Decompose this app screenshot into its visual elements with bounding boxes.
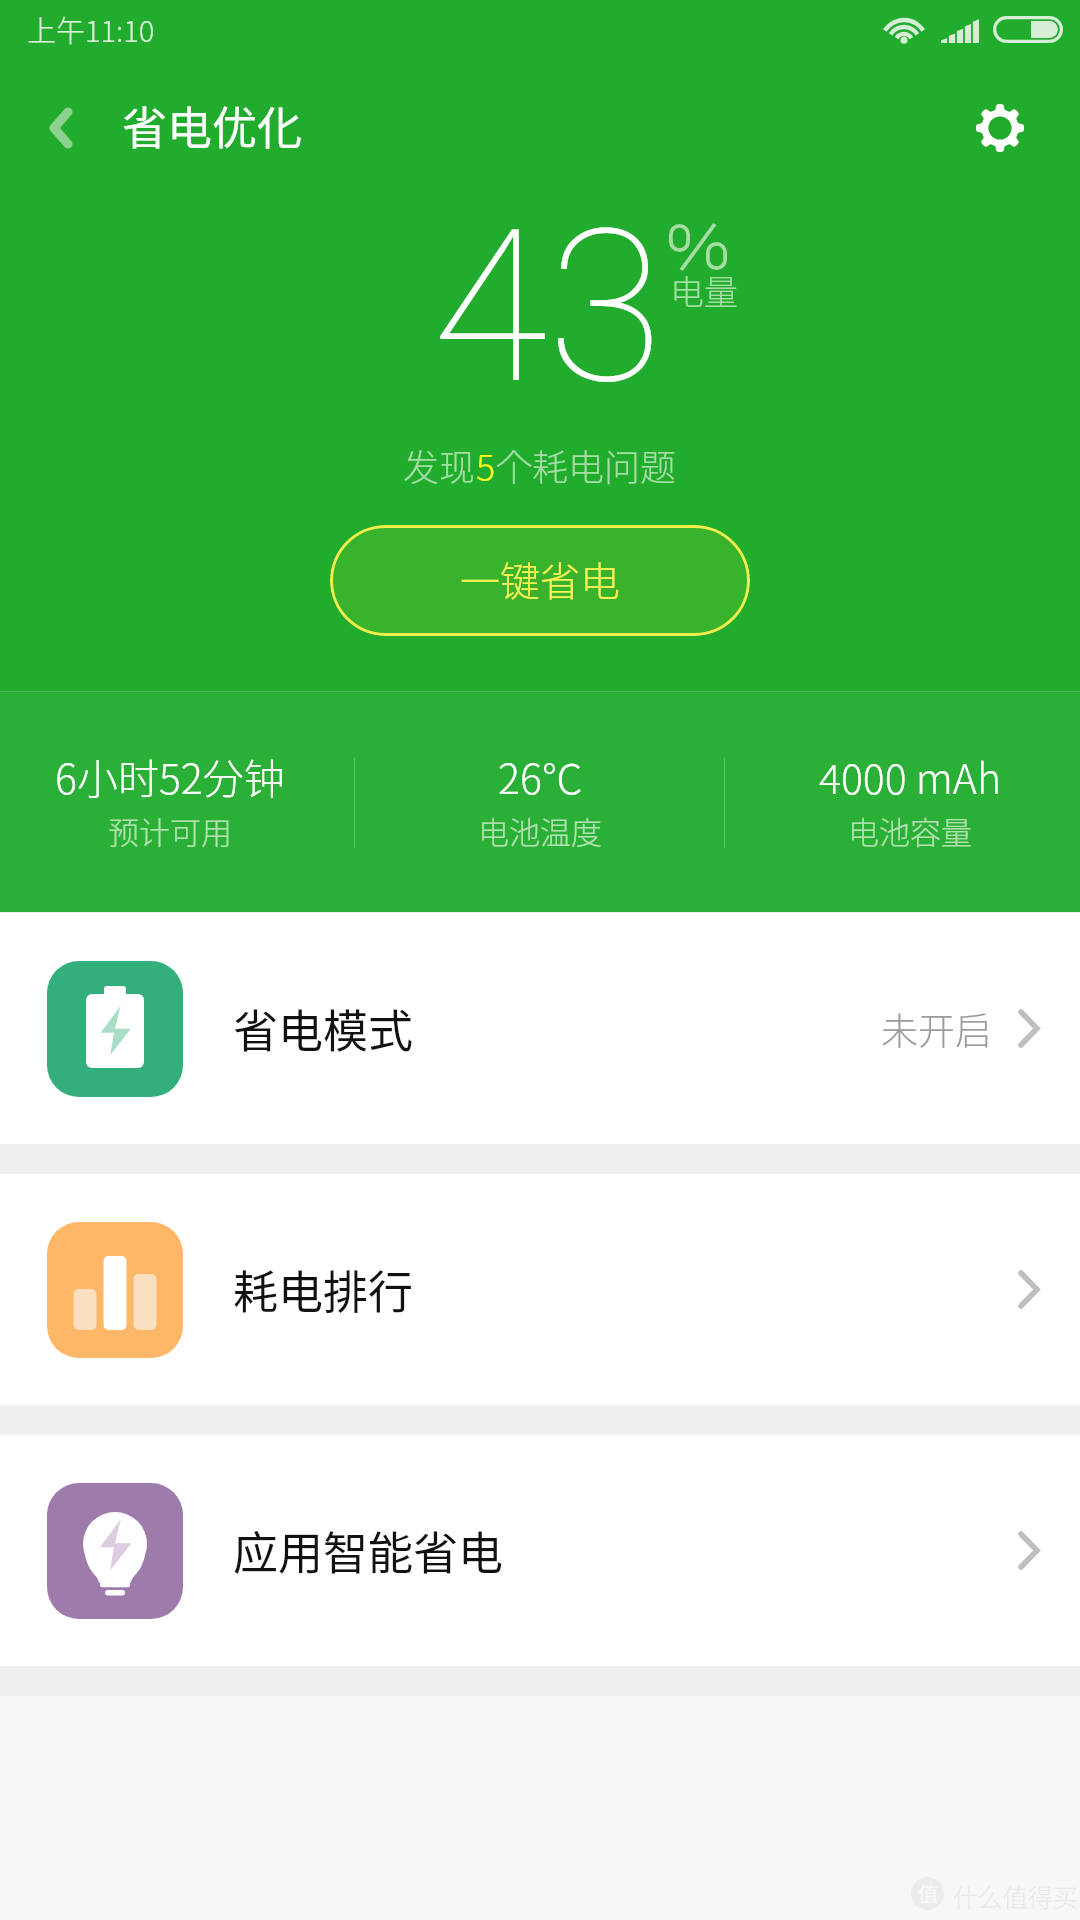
staticText: 未开启 [881, 1002, 992, 1056]
staticText: 一键省电 [460, 550, 620, 608]
staticText: 应用智能省电 [233, 1518, 504, 1583]
staticText: 电量 [670, 266, 738, 315]
staticText: 电池容量 [848, 808, 972, 853]
button[interactable]: 应用智能省电 [0, 1435, 1080, 1666]
staticText: 预计可用 [108, 808, 232, 853]
staticText: 什么值得买 [953, 1878, 1079, 1914]
staticText: 个耗电问题 [496, 439, 677, 491]
staticText: 6小时52分钟 [55, 746, 285, 805]
button[interactable]: 耗电排行 [0, 1174, 1080, 1405]
staticText: 发现 [403, 439, 476, 491]
button[interactable]: Settings [945, 73, 1055, 183]
staticText: 26℃ [498, 746, 583, 805]
staticText: 5 [476, 439, 496, 491]
staticText: 省电优化 [122, 93, 303, 158]
staticText: 43 [432, 184, 663, 431]
staticText: 上午11:10 [27, 8, 155, 50]
button[interactable]: 省电模式 [0, 913, 1080, 1144]
button[interactable]: Back [6, 73, 116, 183]
staticText: 耗电排行 [233, 1257, 414, 1322]
button[interactable]: 一键省电 [330, 525, 750, 636]
staticText: 省电模式 [233, 996, 414, 1061]
staticText: 4000 mAh [819, 746, 1002, 805]
staticText: 值 [918, 1879, 938, 1908]
staticText: 电池温度 [478, 808, 602, 853]
